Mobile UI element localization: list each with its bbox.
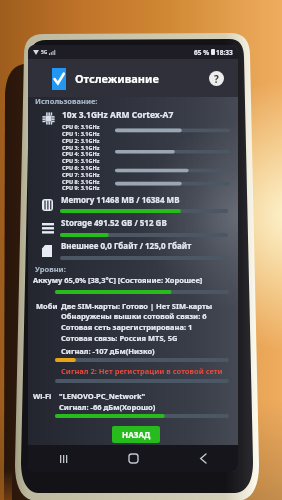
button[interactable] bbox=[28, 59, 238, 97]
staticText: Wi-Fi bbox=[33, 391, 52, 401]
staticText: Две SIM-карты: Готово | Нет SIM-карты bbox=[61, 301, 213, 311]
staticText: CPU 9: 3.1GHz bbox=[62, 184, 100, 191]
staticText: CPU 1: 3.1GHz bbox=[62, 130, 100, 137]
staticText: НАЗАД bbox=[122, 429, 151, 440]
staticText: 18:33 bbox=[216, 48, 233, 57]
staticText: CPU 0: 3.1GHz bbox=[62, 123, 100, 130]
button[interactable] bbox=[32, 240, 232, 262]
staticText: ? bbox=[214, 72, 219, 86]
staticText: Аккуму 65,0% [38,3°C] [Состояние: Хороше… bbox=[33, 275, 203, 285]
staticText: Memory 11468 MB / 16384 MB bbox=[61, 194, 180, 205]
button[interactable] bbox=[32, 218, 232, 240]
staticText: Обнаружены вышки сотовой связи: 6 bbox=[61, 311, 207, 321]
staticText: CPU 7: 3.1GHz bbox=[62, 171, 100, 178]
staticText: CPU 2: 3.1GHz bbox=[62, 137, 100, 144]
staticText: 65 % bbox=[194, 48, 209, 57]
button[interactable] bbox=[32, 194, 232, 216]
button[interactable]: НАЗАД bbox=[112, 426, 160, 443]
staticText: Сигнал: -66 дБм(Хорошо) bbox=[59, 402, 156, 412]
staticText: Уровни: bbox=[35, 264, 66, 274]
staticText: Внешнее 0,0 Гбайт / 125,0 Гбайт bbox=[61, 240, 192, 251]
staticText: Storage 491.52 GB / 512 GB bbox=[61, 217, 167, 228]
button[interactable]: Recent apps bbox=[28, 445, 98, 472]
staticText: CPU 3: 3.1GHz bbox=[62, 144, 100, 151]
staticText: Сигнал: -107 дБм(Низко) bbox=[61, 346, 155, 356]
staticText: CPU 8: 3.1GHz bbox=[62, 178, 100, 185]
button[interactable]: Back bbox=[168, 445, 238, 472]
staticText: CPU 5: 3.1GHz bbox=[62, 157, 100, 164]
staticText: CPU 6: 3.1GHz bbox=[62, 164, 100, 171]
button[interactable]: Home bbox=[98, 445, 168, 472]
staticText: 5G bbox=[41, 49, 48, 56]
button[interactable]: Help bbox=[209, 71, 224, 86]
staticText: Сотовая связь: Россия MTS, 5G bbox=[61, 333, 178, 343]
staticText: 10x 3.1GHz ARM Cortex-A7 bbox=[62, 109, 174, 121]
staticText: Использование: bbox=[35, 96, 98, 106]
staticText: Сотовая сеть зарегистрирована: 1 bbox=[61, 322, 193, 332]
staticText: Сигнал 2: Нет регистрации в сотовой сети bbox=[61, 366, 223, 376]
staticText: Моби bbox=[36, 301, 58, 311]
staticText: "LENOVO-PC_Network" bbox=[59, 391, 146, 401]
staticText: CPU 4: 3.1GHz bbox=[62, 150, 100, 157]
staticText: Отслеживание bbox=[75, 71, 159, 86]
